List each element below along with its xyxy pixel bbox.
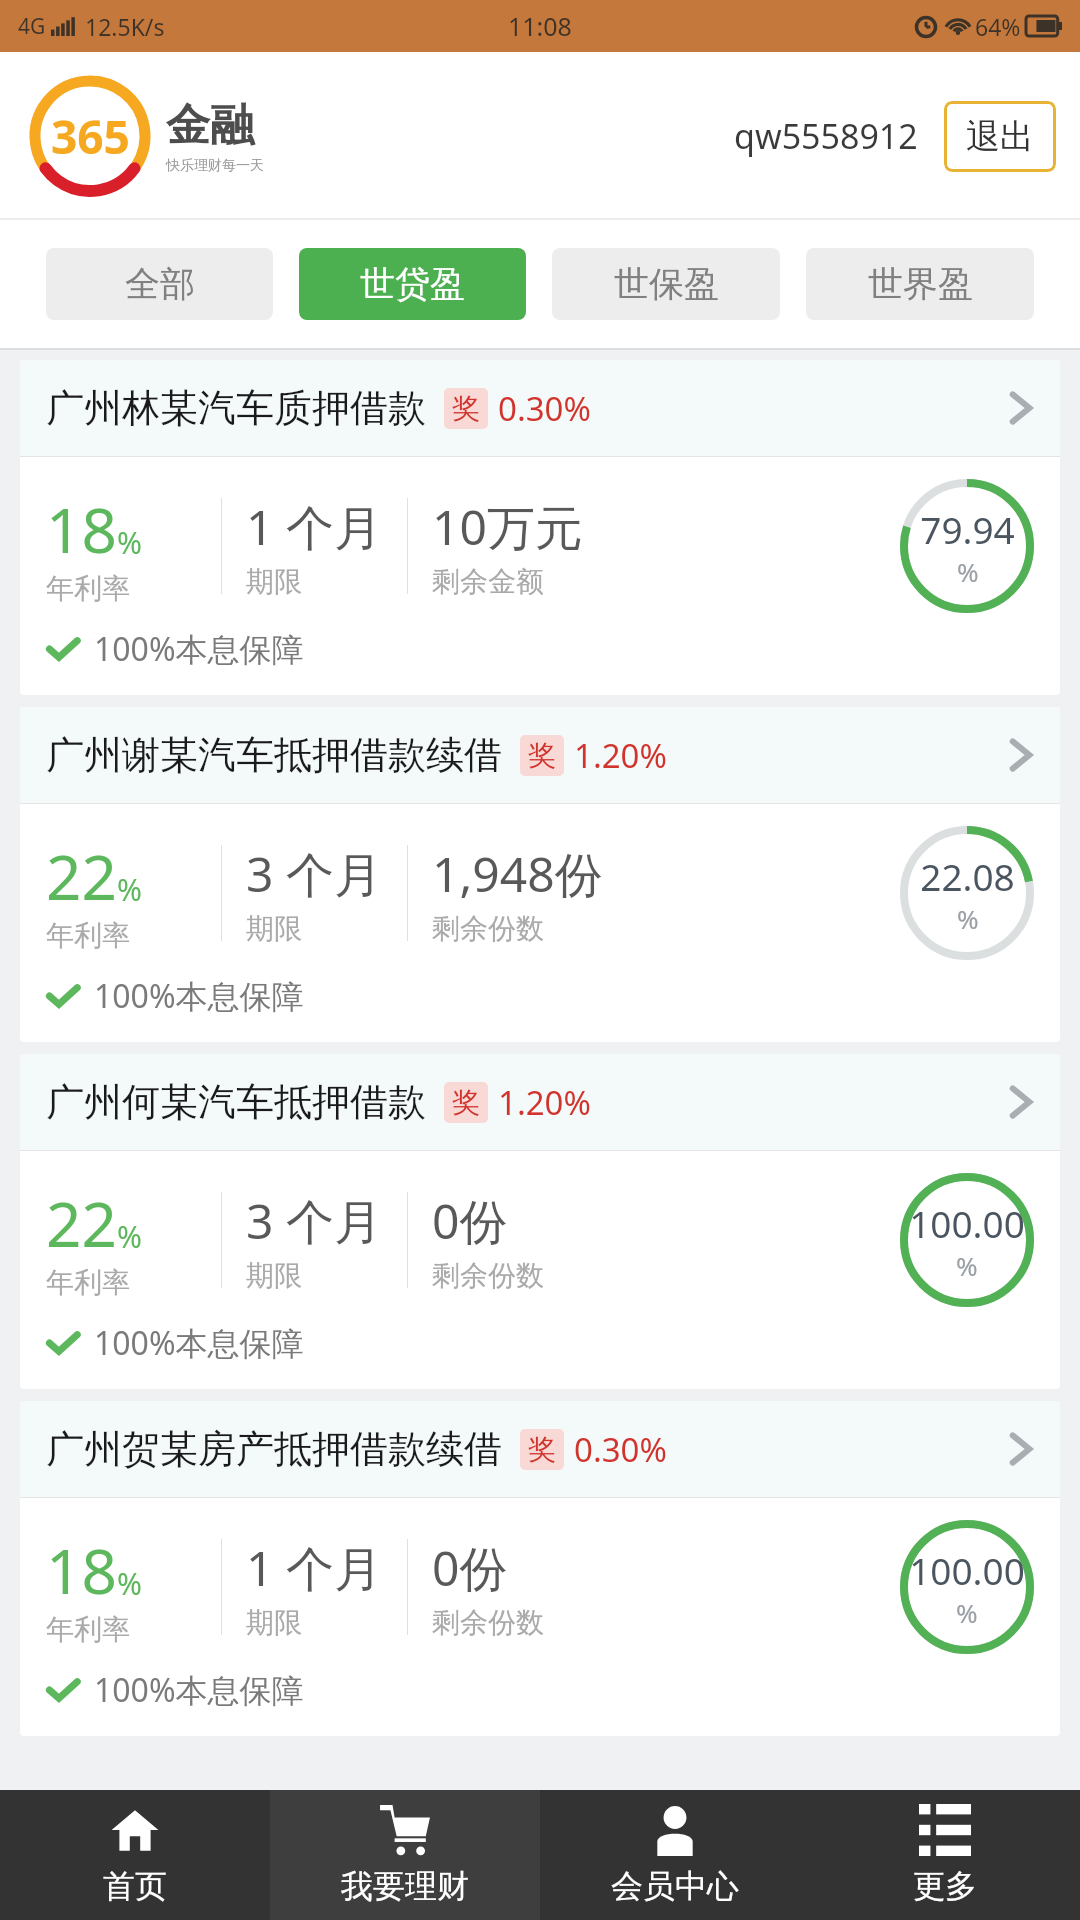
staticText: 年利率 xyxy=(46,918,130,953)
staticText: 全部 xyxy=(125,262,195,306)
staticText: 奖 xyxy=(452,391,480,426)
staticText: 4G xyxy=(18,12,46,41)
staticText: 年利率 xyxy=(46,1265,130,1300)
button[interactable]: 更多 xyxy=(810,1790,1080,1920)
staticText: % xyxy=(956,1595,978,1630)
staticText: 1 个月 xyxy=(246,1535,382,1601)
staticText: 100%本息保障 xyxy=(94,1321,304,1365)
staticText: % xyxy=(117,1216,142,1257)
button[interactable]: 广州何某汽车抵押借款 xyxy=(20,1054,1060,1389)
staticText: 世贷盈 xyxy=(360,262,465,306)
button[interactable]: 世保盈 xyxy=(552,248,780,320)
button[interactable]: 世界盈 xyxy=(806,248,1034,320)
staticText: 年利率 xyxy=(46,1612,130,1647)
staticText: 3 个月 xyxy=(246,841,382,907)
staticText: % xyxy=(956,1248,978,1283)
staticText: 广州谢某汽车抵押借款续借 xyxy=(46,731,502,779)
staticText: 0份 xyxy=(432,1535,508,1601)
staticText: 广州林某汽车质押借款 xyxy=(46,384,426,432)
staticText: 更多 xyxy=(913,1866,977,1906)
staticText: 12.5K/s xyxy=(85,11,165,42)
staticText: 1 个月 xyxy=(246,494,382,560)
staticText: 年利率 xyxy=(46,571,130,606)
staticText: % xyxy=(117,869,142,910)
button[interactable]: 世贷盈 xyxy=(299,248,526,320)
button[interactable]: 会员中心 xyxy=(540,1790,810,1920)
staticText: 广州贺某房产抵押借款续借 xyxy=(46,1425,502,1473)
staticText: 退出 xyxy=(966,115,1034,158)
staticText: % xyxy=(117,522,142,563)
staticText: 79.94 xyxy=(920,504,1015,554)
staticText: 奖 xyxy=(528,738,556,773)
staticText: 365 xyxy=(51,105,130,168)
staticText: % xyxy=(957,901,979,936)
staticText: 期限 xyxy=(246,1258,302,1293)
staticText: 期限 xyxy=(246,911,302,946)
staticText: 期限 xyxy=(246,564,302,599)
staticText: % xyxy=(957,554,979,589)
staticText: 广州何某汽车抵押借款 xyxy=(46,1078,426,1126)
button[interactable]: 广州谢某汽车抵押借款续借 xyxy=(20,707,1060,1042)
staticText: 22 xyxy=(46,1181,117,1265)
staticText: 1.20% xyxy=(498,1080,591,1125)
staticText: 奖 xyxy=(528,1432,556,1467)
staticText: 奖 xyxy=(452,1085,480,1120)
staticText: 18 xyxy=(46,1528,117,1612)
staticText: 11:08 xyxy=(508,9,572,43)
staticText: 世保盈 xyxy=(614,262,719,306)
staticText: 22 xyxy=(46,834,117,918)
button[interactable]: 我要理财 xyxy=(270,1790,540,1920)
staticText: 100%本息保障 xyxy=(94,627,304,671)
staticText: 金融 xyxy=(166,98,254,153)
staticText: 快乐理财每一天 xyxy=(166,157,264,175)
staticText: 剩余份数 xyxy=(432,1605,544,1640)
staticText: 100.00 xyxy=(909,1198,1025,1248)
staticText: 世界盈 xyxy=(868,262,973,306)
staticText: qw5558912 xyxy=(734,113,918,159)
staticText: 22.08 xyxy=(920,851,1015,901)
staticText: 100.00 xyxy=(909,1545,1025,1595)
staticText: 首页 xyxy=(103,1866,167,1906)
staticText: 100%本息保障 xyxy=(94,1668,304,1712)
staticText: 剩余金额 xyxy=(432,564,544,599)
staticText: 64% xyxy=(975,11,1021,42)
staticText: 0份 xyxy=(432,1188,508,1254)
staticText: 会员中心 xyxy=(611,1866,739,1906)
staticText: 1.20% xyxy=(574,733,667,778)
staticText: 我要理财 xyxy=(341,1866,469,1906)
staticText: 剩余份数 xyxy=(432,911,544,946)
staticText: 3 个月 xyxy=(246,1188,382,1254)
staticText: 10万元 xyxy=(432,494,583,560)
staticText: % xyxy=(117,1563,142,1604)
staticText: 0.30% xyxy=(498,386,591,431)
button[interactable]: 广州林某汽车质押借款 xyxy=(20,360,1060,695)
staticText: 18 xyxy=(46,487,117,571)
staticText: 期限 xyxy=(246,1605,302,1640)
button[interactable]: 退出 xyxy=(944,101,1056,172)
staticText: 100%本息保障 xyxy=(94,974,304,1018)
staticText: 1,948份 xyxy=(432,841,603,907)
button[interactable]: 首页 xyxy=(0,1790,270,1920)
button[interactable]: 全部 xyxy=(46,248,273,320)
button[interactable]: 广州贺某房产抵押借款续借 xyxy=(20,1401,1060,1736)
staticText: 剩余份数 xyxy=(432,1258,544,1293)
staticText: 0.30% xyxy=(574,1427,667,1472)
